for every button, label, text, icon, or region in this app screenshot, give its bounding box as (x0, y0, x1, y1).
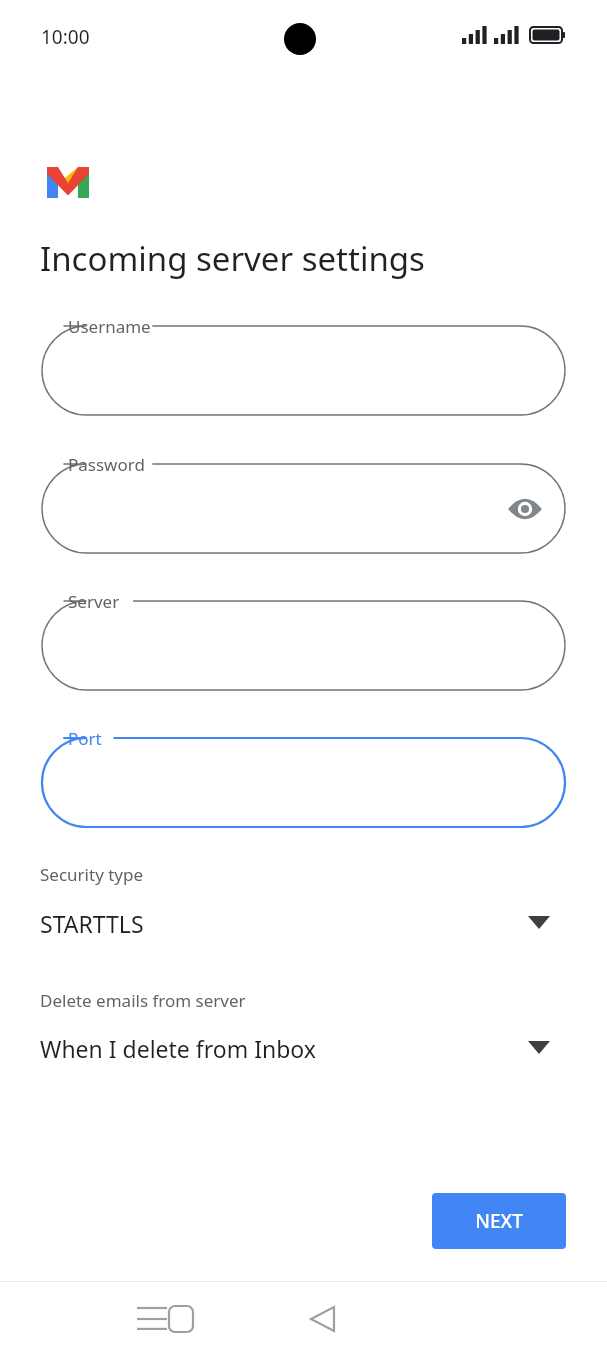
button[interactable]: Port (42, 738, 565, 827)
button[interactable]: NEXT (432, 1193, 566, 1249)
button[interactable]: Security type (0, 863, 607, 954)
button[interactable]: Username (42, 326, 565, 415)
staticText: Password (68, 453, 145, 476)
staticText: STARTTLS (40, 908, 144, 939)
button[interactable]: Delete emails from server (0, 989, 607, 1079)
button[interactable]: Recent apps (122, 1289, 182, 1349)
staticText: When I delete from Inbox (40, 1033, 316, 1064)
button[interactable]: Home (151, 1289, 211, 1349)
staticText: Server (68, 590, 120, 613)
staticText: Security type (40, 863, 144, 886)
button[interactable]: Back (292, 1289, 352, 1349)
staticText: Delete emails from server (40, 989, 246, 1012)
button[interactable]: Server (42, 601, 565, 690)
staticText: Username (68, 315, 151, 338)
staticText: 10:00 (41, 24, 90, 50)
staticText: Port (68, 727, 102, 750)
staticText: NEXT (475, 1208, 523, 1234)
staticText: Incoming server settings (40, 236, 425, 281)
button[interactable]: Show password (503, 487, 547, 531)
button[interactable]: Password (42, 464, 565, 553)
